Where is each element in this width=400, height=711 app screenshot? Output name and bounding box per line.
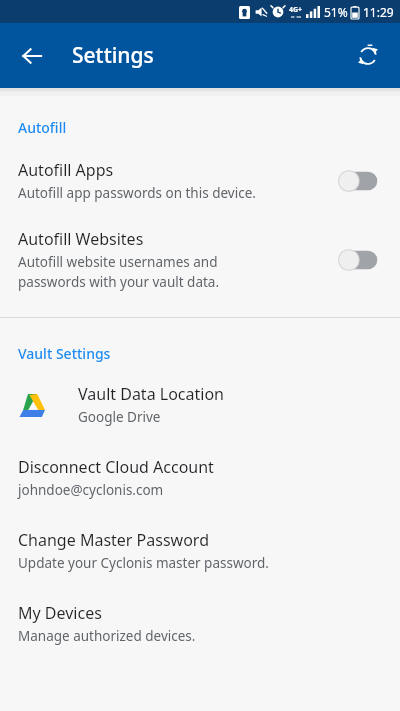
button[interactable]: Sync bbox=[344, 32, 392, 80]
button[interactable]: Autofill Apps bbox=[0, 159, 400, 202]
staticText: Autofill Apps bbox=[18, 159, 114, 181]
button[interactable]: Disconnect Cloud Account bbox=[0, 456, 400, 499]
staticText: 4G+ bbox=[289, 5, 303, 15]
staticText: Autofill website usernames and passwords… bbox=[18, 253, 220, 291]
button[interactable]: Autofill Websites bbox=[0, 228, 400, 291]
staticText: Vault Data Location bbox=[78, 383, 224, 405]
staticText: Google Drive bbox=[78, 408, 161, 426]
staticText: My Devices bbox=[18, 602, 102, 624]
other: Google Drive bbox=[14, 387, 50, 423]
staticText: Settings bbox=[72, 41, 154, 70]
button[interactable]: Toggle bbox=[336, 166, 384, 196]
staticText: Autofill bbox=[18, 118, 67, 137]
staticText: Disconnect Cloud Account bbox=[18, 456, 214, 478]
button[interactable]: Google Drive bbox=[0, 383, 400, 426]
staticText: Autofill app passwords on this device. bbox=[18, 184, 256, 202]
staticText: Autofill Websites bbox=[18, 228, 144, 250]
staticText: Change Master Password bbox=[18, 529, 209, 551]
staticText: Vault Settings bbox=[18, 344, 111, 363]
staticText: johndoe@cyclonis.com bbox=[18, 481, 164, 499]
button[interactable]: My Devices bbox=[0, 602, 400, 645]
button[interactable]: Toggle bbox=[336, 245, 384, 275]
staticText: Manage authorized devices. bbox=[18, 627, 196, 645]
button[interactable]: Back bbox=[8, 32, 56, 80]
staticText: 51% bbox=[324, 4, 348, 20]
staticText: 11:29 bbox=[363, 4, 394, 20]
button[interactable]: Change Master Password bbox=[0, 529, 400, 572]
staticText: Update your Cyclonis master password. bbox=[18, 554, 269, 572]
